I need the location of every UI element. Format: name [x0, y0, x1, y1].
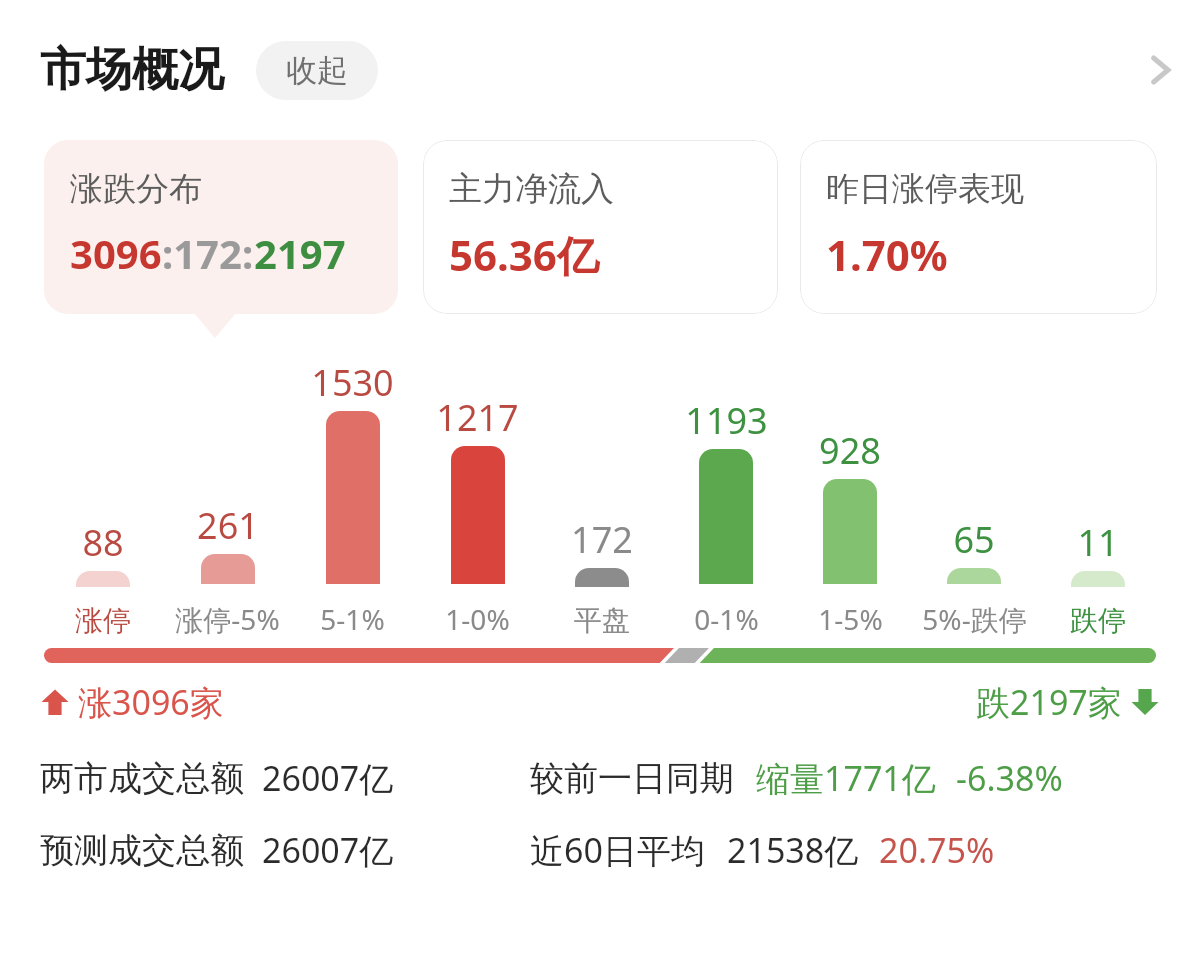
staticText: 涨跌分布	[70, 168, 202, 210]
staticText: 2197	[254, 226, 346, 280]
staticText: 21538亿	[727, 827, 859, 873]
staticText: 1-5%	[818, 600, 883, 638]
staticText: 1.70%	[826, 226, 948, 283]
staticText: 市场概况	[40, 41, 224, 99]
staticText: 近60日平均	[530, 827, 705, 873]
staticText: 平盘	[574, 603, 630, 638]
staticText: 0-1%	[694, 600, 759, 638]
button[interactable]: 主力净流入	[423, 140, 778, 314]
staticText: 172	[571, 515, 633, 564]
staticText: 928	[819, 426, 881, 475]
staticText: 5-1%	[320, 600, 385, 638]
staticText: 20.75%	[879, 827, 995, 873]
staticText: 1193	[685, 396, 768, 445]
staticText: 1217	[436, 393, 519, 442]
staticText: 昨日涨停表现	[826, 168, 1024, 210]
button[interactable]: 查看更多	[1120, 30, 1200, 110]
staticText: 65	[953, 515, 995, 564]
staticText: 26007亿	[262, 755, 394, 801]
staticText: 涨停-5%	[175, 600, 280, 638]
staticText: -6.38%	[956, 755, 1063, 801]
button[interactable]: 昨日涨停表现	[800, 140, 1157, 314]
staticText: 缩量1771亿	[756, 755, 936, 801]
staticText: 涨停	[75, 603, 131, 638]
staticText: 3096	[70, 226, 162, 280]
staticText: 1530	[311, 358, 394, 407]
staticText: 1-0%	[445, 600, 510, 638]
staticText: 56.36亿	[449, 226, 599, 283]
button[interactable]: 收起	[256, 41, 378, 100]
staticText: 88	[82, 518, 124, 567]
staticText: 26007亿	[262, 827, 394, 873]
staticText: 两市成交总额	[40, 757, 244, 800]
staticText: 5%-跌停	[922, 600, 1027, 638]
staticText: 跌2197家	[976, 679, 1122, 725]
staticText: 预测成交总额	[40, 829, 244, 872]
staticText: 261	[197, 501, 259, 550]
staticText: :172:	[162, 226, 254, 280]
staticText: 较前一日同期	[530, 757, 734, 800]
staticText: 涨3096家	[78, 679, 224, 725]
staticText: 跌停	[1070, 603, 1126, 638]
button[interactable]: 涨跌分布	[44, 140, 398, 314]
staticText: 主力净流入	[449, 168, 614, 210]
staticText: 收起	[286, 51, 348, 90]
staticText: 11	[1077, 518, 1119, 567]
